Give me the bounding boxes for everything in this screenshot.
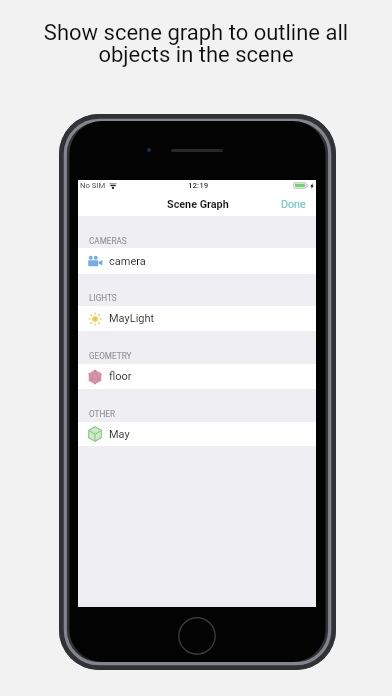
button[interactable]: Done	[271, 197, 316, 216]
staticText: floor	[109, 370, 132, 383]
staticText: camera	[109, 255, 146, 268]
staticText: GEOMETRY	[89, 351, 132, 361]
button[interactable]: MayLight	[78, 306, 316, 331]
staticText: No SIM	[80, 181, 106, 190]
staticText: CAMERAS	[89, 236, 127, 246]
button[interactable]: floor	[78, 364, 316, 389]
staticText: OTHER	[89, 409, 115, 419]
staticText: Show scene graph to outline all objects …	[0, 20, 392, 67]
staticText: MayLight	[109, 312, 155, 325]
button[interactable]: May	[78, 422, 316, 446]
staticText: Done	[281, 198, 306, 211]
staticText: 12:19	[188, 181, 209, 190]
staticText: LIGHTS	[89, 293, 117, 303]
button[interactable]: camera	[78, 248, 316, 274]
staticText: Scene Graph	[167, 198, 229, 211]
staticText: May	[109, 428, 130, 441]
